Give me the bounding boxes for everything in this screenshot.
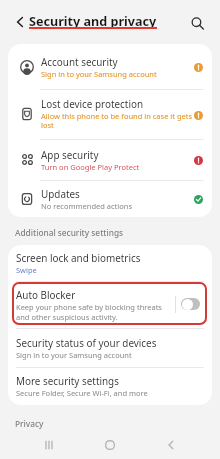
button[interactable]: Navigate up (7, 9, 33, 35)
button[interactable]: Lost device protection (8, 89, 212, 139)
staticText: Turn on Google Play Protect (41, 162, 140, 172)
staticText: Keep your phone safe by blocking threats… (16, 302, 164, 322)
button[interactable]: Search (184, 10, 210, 36)
staticText: Screen lock and biometrics (16, 251, 141, 264)
button[interactable]: Auto Blocker toggle (181, 298, 200, 310)
button[interactable]: More security settings (8, 367, 212, 405)
button[interactable]: App security (8, 139, 212, 180)
staticText: Additional security settings (15, 227, 124, 238)
button[interactable]: Security status of your devices (8, 328, 212, 367)
staticText: Secure Folder, Secure Wi-Fi, and more (16, 388, 148, 398)
button[interactable]: Screen lock and biometrics (8, 245, 212, 281)
staticText: Allow this phone to be found in case it … (41, 111, 193, 131)
staticText: Account security (41, 55, 118, 68)
staticText: Sign in to your Samsung account (41, 69, 157, 79)
staticText: Security and privacy (29, 13, 157, 30)
staticText: Swipe (16, 265, 37, 275)
staticText: No recommended actions (41, 201, 133, 211)
button[interactable]: Back (155, 429, 187, 459)
button[interactable]: Updates (8, 180, 212, 217)
staticText: Auto Blocker (16, 288, 76, 301)
staticText: App security (41, 148, 99, 161)
staticText: Lost device protection (41, 97, 144, 110)
staticText: Privacy (15, 418, 44, 429)
staticText: More security settings (16, 374, 119, 387)
staticText: Updates (41, 187, 80, 200)
staticText: Security status of your devices (16, 336, 157, 349)
button[interactable]: Recent apps (33, 429, 65, 459)
button[interactable]: Account security (8, 44, 212, 89)
button[interactable]: Home (94, 429, 126, 459)
button[interactable]: Auto Blocker (8, 282, 212, 328)
staticText: Sign in to your Samsung account (16, 350, 132, 360)
